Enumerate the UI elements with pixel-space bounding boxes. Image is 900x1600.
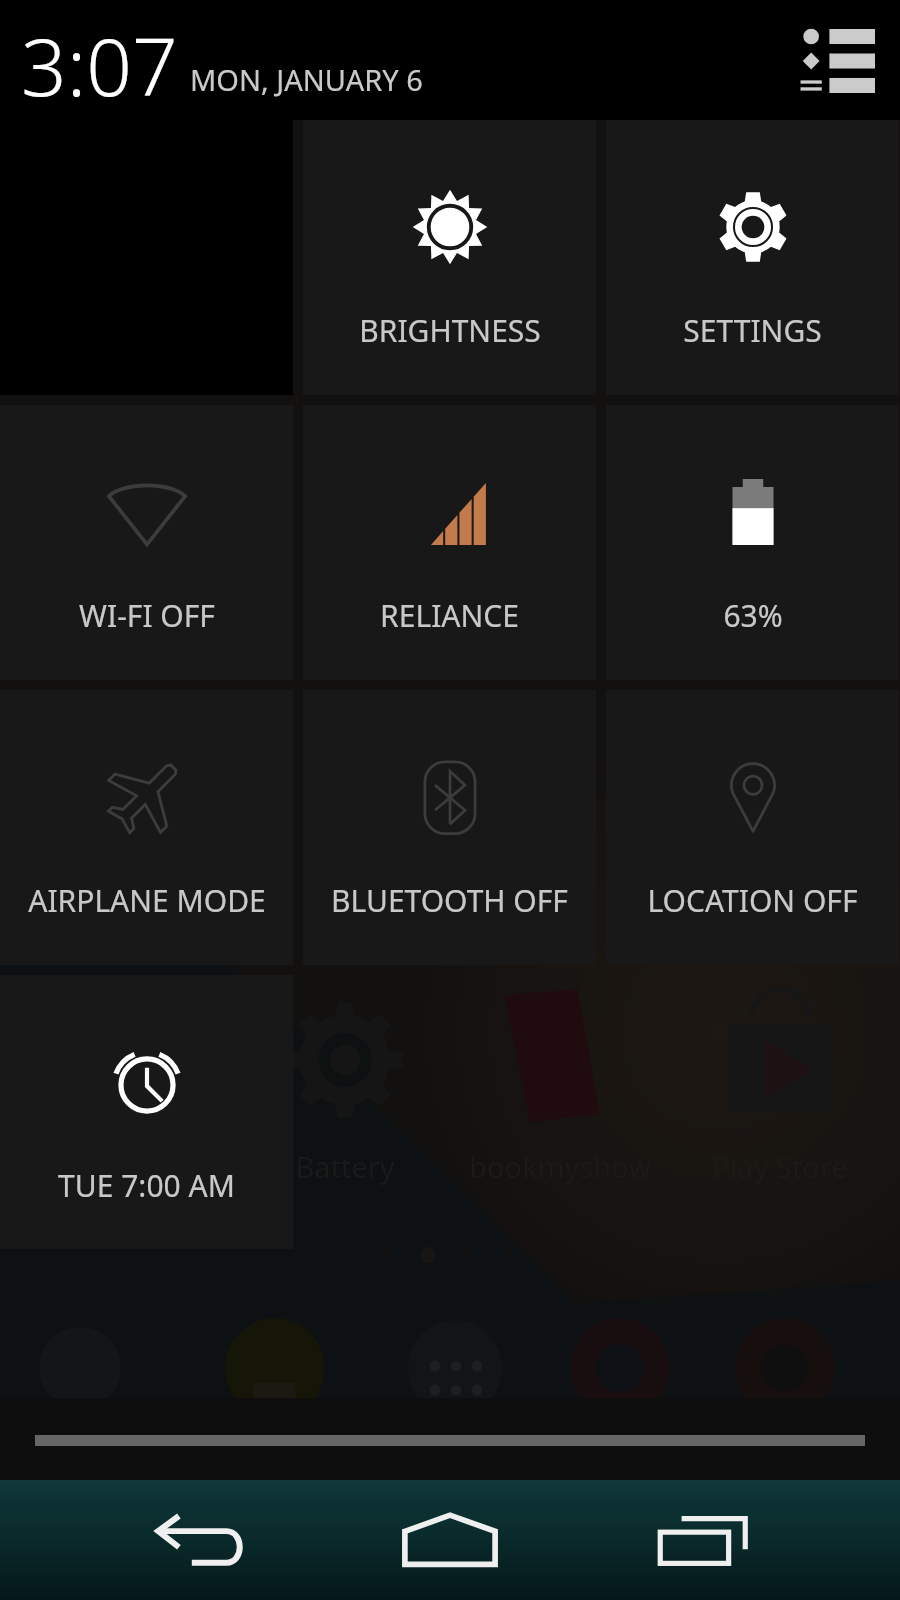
button[interactable]: AIRPLANE MODE <box>0 690 293 965</box>
staticText: 63% <box>723 595 783 636</box>
button[interactable]: RELIANCE <box>303 405 596 680</box>
staticText: AIRPLANE MODE <box>28 880 266 921</box>
staticText: RELIANCE <box>380 595 519 636</box>
button[interactable]: Back <box>155 1515 247 1567</box>
staticText: TUE 7:00 AM <box>58 1165 235 1206</box>
staticText: BRIGHTNESS <box>359 310 541 351</box>
button[interactable]: Notifications <box>799 29 875 93</box>
button[interactable]: BLUETOOTH OFF <box>303 690 596 965</box>
staticText: Battery <box>285 1147 405 1186</box>
button[interactable]: Home <box>402 1513 498 1567</box>
button[interactable]: Recent apps <box>655 1515 750 1567</box>
button[interactable]: SETTINGS <box>606 120 899 395</box>
staticText: BLUETOOTH OFF <box>331 880 568 921</box>
staticText: SETTINGS <box>683 310 822 351</box>
staticText: MON, JANUARY 6 <box>190 60 423 99</box>
button[interactable]: WI-FI OFF <box>0 405 293 680</box>
staticText: WI-FI OFF <box>79 595 215 636</box>
button[interactable]: LOCATION OFF <box>606 690 899 965</box>
button[interactable]: 63% <box>606 405 899 680</box>
button[interactable]: BRIGHTNESS <box>303 120 596 395</box>
staticText: 3:07 <box>21 10 178 119</box>
staticText: LOCATION OFF <box>647 880 858 921</box>
button[interactable]: TUE 7:00 AM <box>0 975 293 1249</box>
